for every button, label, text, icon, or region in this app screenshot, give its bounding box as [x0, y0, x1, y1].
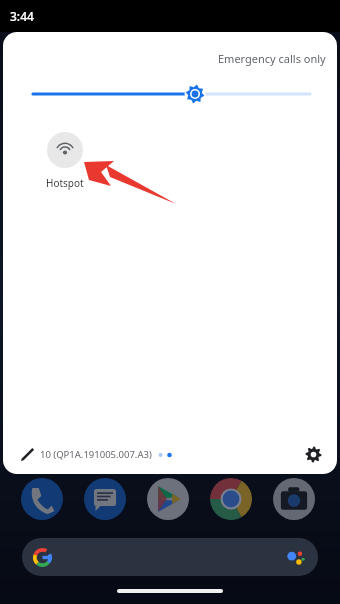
staticText: 3:44: [10, 8, 34, 24]
staticText: Emergency calls only: [218, 51, 326, 66]
button[interactable]: Hotspot: [30, 130, 100, 192]
staticText: 10 (QP1A.191005.007.A3): [40, 448, 152, 461]
other: Hotspot: [47, 132, 83, 168]
button[interactable]: Search: [22, 538, 318, 576]
staticText: Hotspot: [46, 176, 84, 190]
button[interactable]: Settings: [298, 439, 328, 469]
button[interactable]: Edit tiles: [13, 440, 41, 468]
button[interactable]: [3, 81, 337, 107]
